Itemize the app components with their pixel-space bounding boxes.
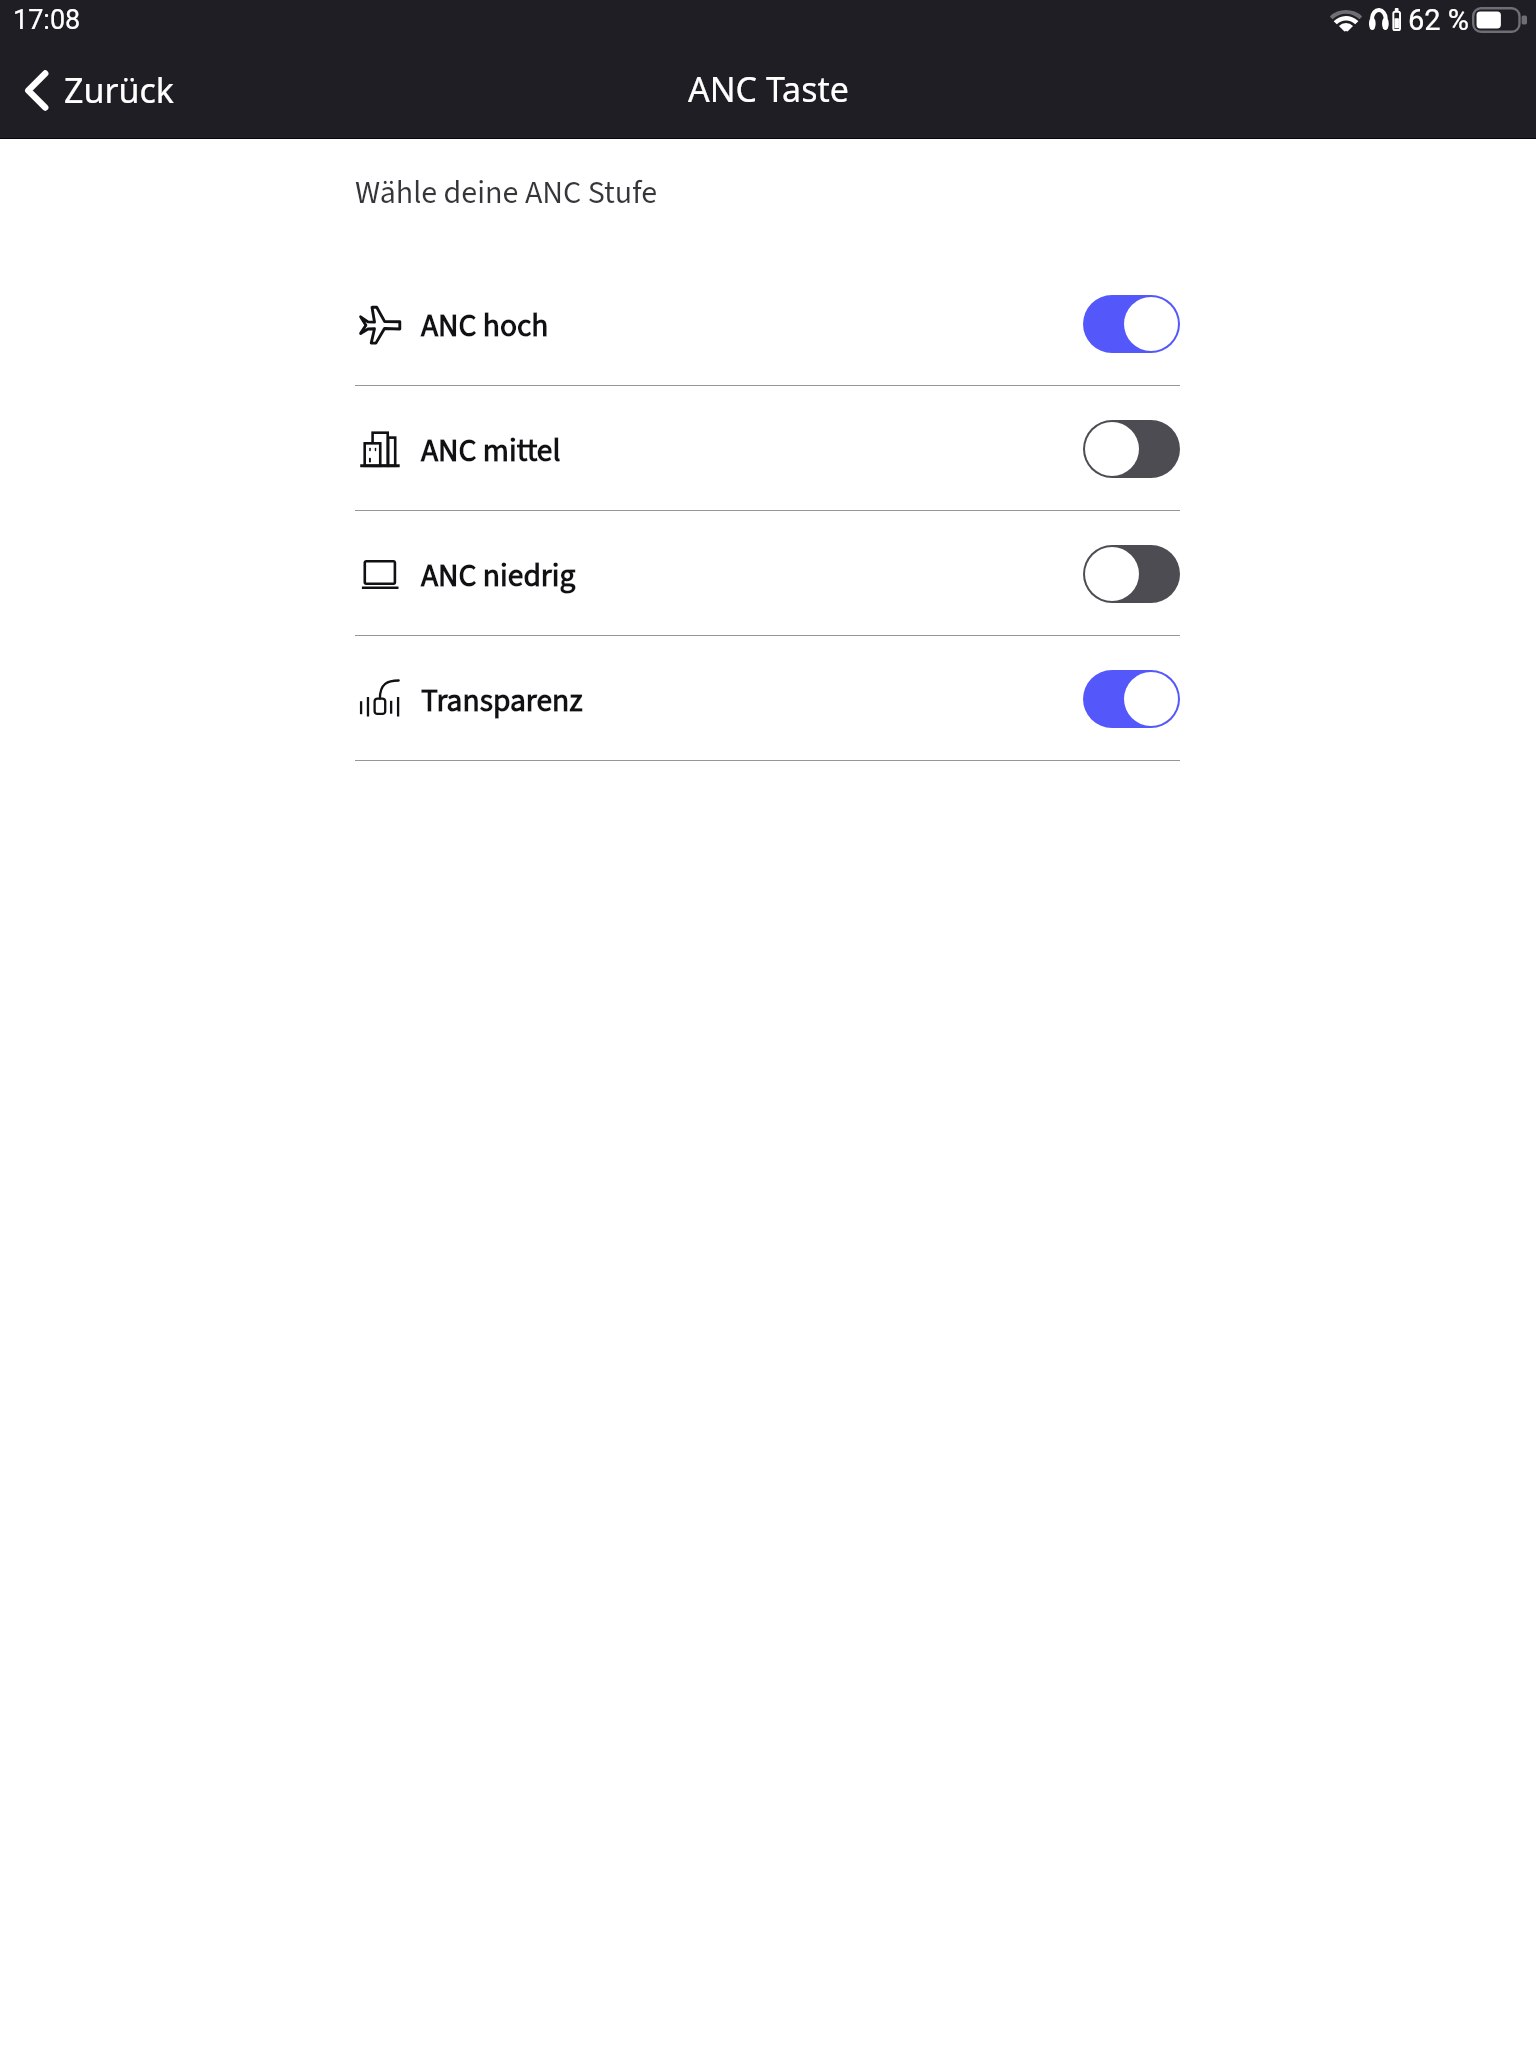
staticText: 17:08 xyxy=(13,4,81,36)
button[interactable]: Back xyxy=(12,61,186,119)
staticText: ANC niedrig xyxy=(421,554,576,599)
staticText: 62 % xyxy=(1408,3,1470,37)
other: Headphone battery xyxy=(1369,8,1401,31)
button[interactable]: Off xyxy=(1083,545,1180,603)
staticText: Wähle deine ANC Stufe xyxy=(355,170,658,216)
staticText: Transparenz xyxy=(421,679,583,724)
other: Back xyxy=(24,70,49,111)
button[interactable]: Transparency xyxy=(355,636,1180,761)
button[interactable]: On xyxy=(1083,670,1180,728)
staticText: ANC Taste xyxy=(688,66,849,112)
button[interactable]: Flight mode xyxy=(355,261,1180,386)
staticText: Zurück xyxy=(64,67,174,113)
button[interactable]: Laptop xyxy=(355,511,1180,636)
button[interactable]: On xyxy=(1083,295,1180,353)
other: Transparency xyxy=(360,679,402,721)
other: City xyxy=(360,429,402,471)
staticText: ANC hoch xyxy=(421,304,549,349)
other: Laptop xyxy=(360,554,402,596)
other: Flight mode xyxy=(360,304,402,346)
other: Battery xyxy=(1472,7,1527,33)
staticText: ANC mittel xyxy=(421,429,561,474)
other: Wi-Fi xyxy=(1332,9,1360,31)
button[interactable]: Off xyxy=(1083,420,1180,478)
button[interactable]: City xyxy=(355,386,1180,511)
